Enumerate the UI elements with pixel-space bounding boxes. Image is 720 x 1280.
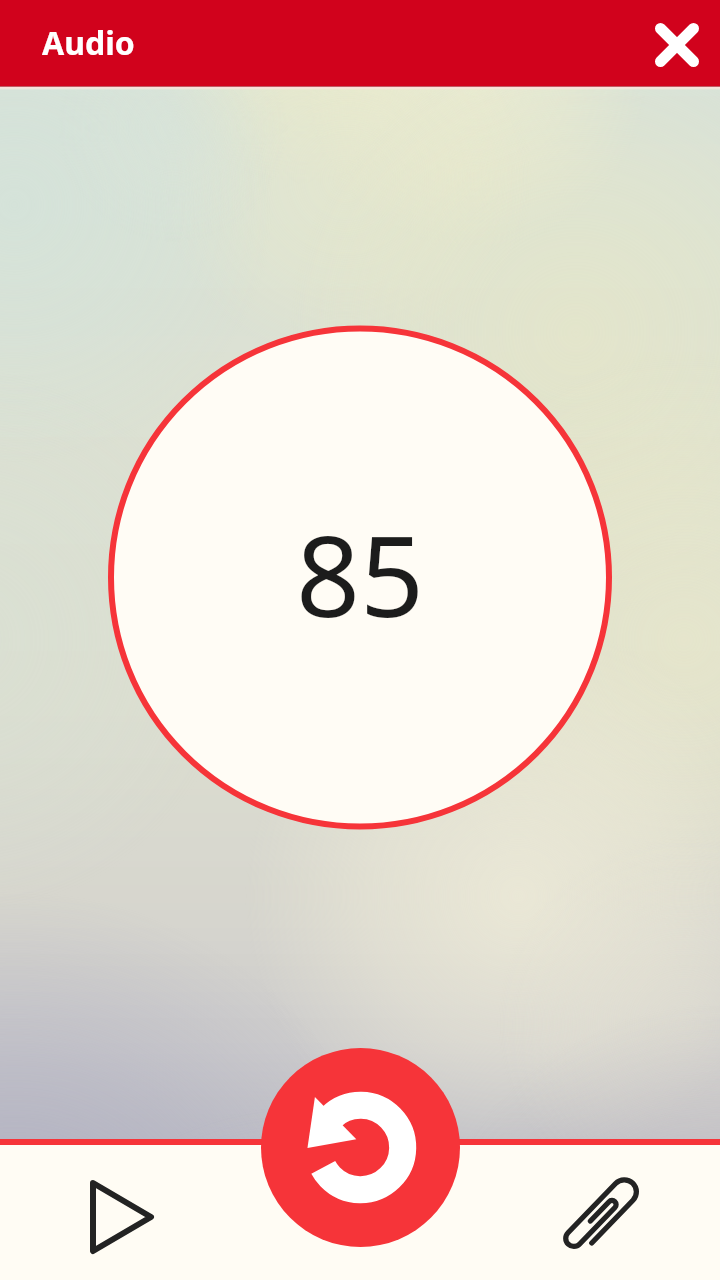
staticText: 85 bbox=[296, 497, 425, 650]
button[interactable]: Play bbox=[0, 1145, 240, 1280]
button[interactable]: Close bbox=[642, 8, 712, 78]
button[interactable]: Attach file bbox=[480, 1145, 720, 1280]
button[interactable]: Restart recording bbox=[261, 1048, 460, 1247]
staticText: Audio bbox=[42, 21, 135, 65]
